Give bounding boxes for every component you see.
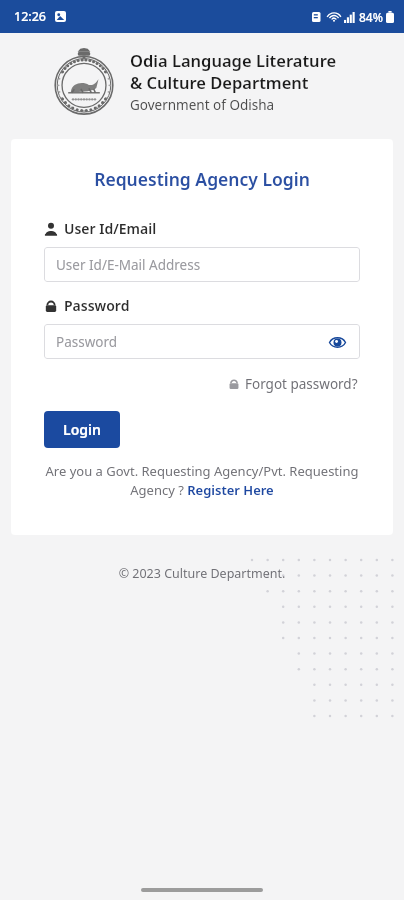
button[interactable]: User Id/E-Mail Address <box>44 247 360 282</box>
staticText: User Id/Email <box>64 219 157 238</box>
button[interactable]: Login <box>44 411 120 448</box>
staticText: Requesting Agency Login <box>44 167 360 191</box>
staticText: & Culture Department <box>130 71 309 93</box>
button[interactable]: Password <box>44 324 360 359</box>
staticText: Password <box>56 333 118 351</box>
button[interactable]: Forgot password? <box>226 373 360 395</box>
staticText: User Id/E-Mail Address <box>56 256 201 274</box>
staticText: Government of Odisha <box>130 96 275 114</box>
staticText: 12:26 <box>14 8 47 25</box>
staticText: Odia Language Literature <box>130 49 337 71</box>
staticText: © 2023 Culture Department. <box>0 565 404 582</box>
staticText: 84% <box>359 9 383 25</box>
button[interactable]: Show password <box>326 331 348 353</box>
staticText: Forgot password? <box>245 375 358 393</box>
staticText: Password <box>64 296 130 315</box>
staticText: Login <box>63 420 101 439</box>
button[interactable]: Are you a Govt. Requesting Agency/Pvt. R… <box>44 462 360 499</box>
